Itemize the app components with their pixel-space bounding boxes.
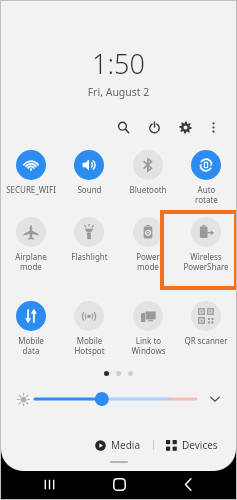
button[interactable]: Link to Windows — [120, 299, 176, 358]
staticText: Airplane mode — [15, 251, 47, 272]
staticText: QR scanner — [184, 335, 228, 346]
staticText: Media — [111, 438, 141, 452]
button[interactable]: Home — [97, 469, 141, 499]
button[interactable]: More options — [202, 116, 224, 138]
staticText: Wireless PowerShare — [183, 251, 229, 272]
staticText: Bluetooth — [129, 184, 167, 195]
staticText: Power mode — [136, 251, 160, 272]
button[interactable]: Bluetooth — [120, 148, 176, 197]
staticText: Devices — [182, 438, 218, 452]
button[interactable]: Wireless PowerShare — [178, 215, 234, 274]
staticText: Auto rotate — [195, 184, 218, 205]
button[interactable]: Settings — [174, 116, 196, 138]
button[interactable]: Back — [166, 469, 210, 499]
button[interactable]: Power — [143, 116, 165, 138]
button[interactable]: Devices — [162, 435, 222, 455]
staticText: 1:50 — [1, 45, 236, 82]
staticText: Mobile Hotspot — [74, 335, 105, 356]
button[interactable]: Auto rotate — [178, 148, 234, 207]
button[interactable]: Brightness — [11, 387, 35, 411]
staticText: Flashlight — [71, 251, 108, 262]
button[interactable]: Mobile data — [3, 299, 59, 358]
button[interactable]: SECURE_WIFI — [3, 148, 59, 197]
button[interactable]: QR scanner — [178, 299, 234, 348]
staticText: Mobile data — [18, 335, 44, 356]
staticText: SECURE_WIFI — [6, 184, 56, 195]
staticText: Fri, August 2 — [1, 85, 236, 99]
button[interactable]: Power mode — [120, 215, 176, 274]
button[interactable]: Sound — [61, 148, 117, 197]
button[interactable]: Airplane mode — [3, 215, 59, 274]
staticText: Sound — [77, 184, 102, 195]
button[interactable]: Flashlight — [61, 215, 117, 264]
button[interactable] — [35, 388, 196, 410]
button[interactable]: Expand brightness settings — [204, 388, 226, 410]
button[interactable]: Media — [91, 435, 145, 455]
button[interactable]: Mobile Hotspot — [61, 299, 117, 358]
button[interactable]: Recents — [27, 469, 71, 499]
button[interactable]: Search — [112, 116, 134, 138]
staticText: Link to Windows — [131, 335, 166, 356]
